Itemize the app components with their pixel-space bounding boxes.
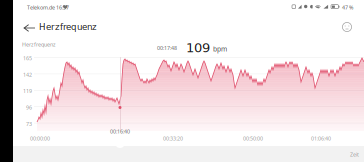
staticText: 142: [23, 71, 32, 78]
staticText: Herzfrequenz: [22, 41, 56, 48]
staticText: Telekom.de 16:57: [27, 4, 69, 11]
staticText: 00:17:48: [157, 44, 177, 52]
staticText: 96: [26, 104, 32, 111]
staticText: Zeit: [350, 151, 359, 158]
staticText: 47 %: [342, 4, 353, 11]
staticText: Herzfrequenz: [39, 22, 97, 32]
staticText: 73: [26, 120, 32, 127]
button[interactable]: Help: [338, 18, 356, 36]
staticText: 00:00:00: [30, 135, 50, 142]
staticText: 109: [186, 40, 210, 55]
staticText: 00:33:20: [163, 135, 183, 142]
button[interactable]: Back: [20, 20, 39, 36]
staticText: 01:06:40: [311, 135, 331, 142]
staticText: bpm: [213, 44, 227, 53]
staticText: 00:50:00: [243, 135, 263, 142]
staticText: 119: [23, 87, 32, 95]
staticText: 00:16:40: [110, 128, 130, 135]
staticText: 165: [23, 55, 32, 62]
